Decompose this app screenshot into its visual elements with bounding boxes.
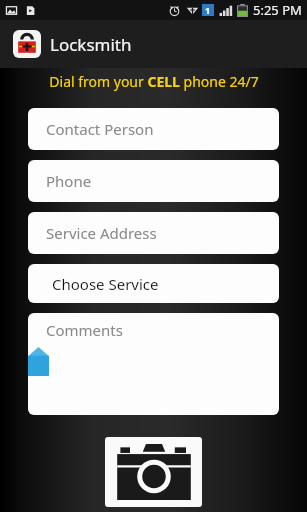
staticText: Comments [46, 320, 123, 340]
staticText: 1 [205, 4, 211, 16]
staticText: Phone [46, 171, 92, 191]
staticText: 5:25 PM [253, 1, 302, 19]
other: App icon [13, 30, 41, 58]
button[interactable]: App icon [0, 20, 307, 68]
button[interactable]: Service Address [28, 212, 279, 254]
staticText: Dial from your CELL phone 24/7 [49, 72, 259, 91]
button[interactable]: Choose Service [28, 264, 279, 303]
button[interactable]: Phone [28, 160, 279, 202]
staticText: Locksmith [50, 33, 132, 56]
staticText: Service Address [46, 223, 157, 243]
button[interactable]: Comments [28, 313, 279, 415]
button[interactable]: Contact Person [28, 108, 279, 150]
staticText: Contact Person [46, 119, 154, 139]
button[interactable]: Take photo [105, 437, 202, 507]
staticText: Choose Service [52, 274, 159, 294]
